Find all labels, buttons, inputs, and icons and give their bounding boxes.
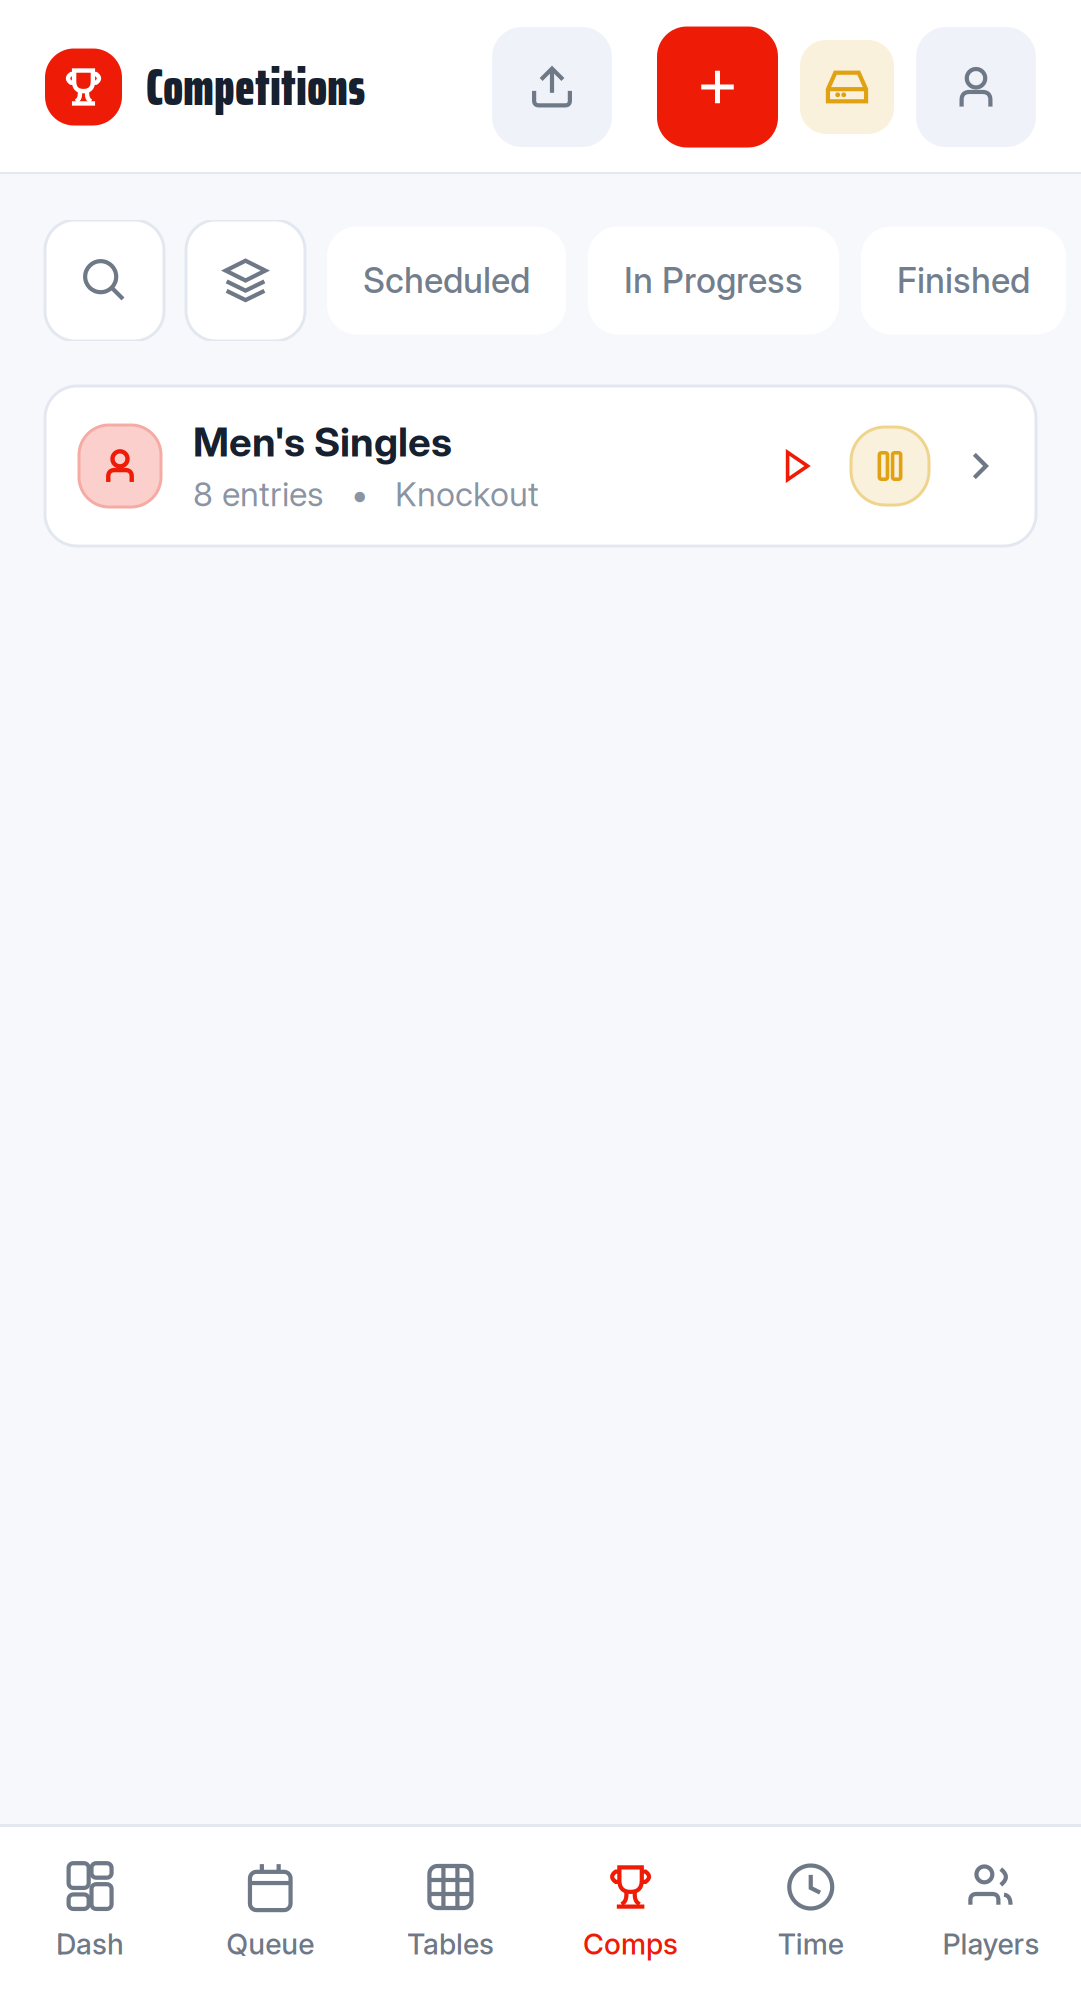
button[interactable]: Finished — [861, 226, 1066, 334]
staticText: In Progress — [624, 259, 803, 301]
button[interactable]: Storage — [800, 40, 894, 134]
button[interactable]: Pause competition — [851, 427, 929, 505]
button[interactable]: Men's Singles — [0, 341, 1081, 546]
button[interactable]: Comps — [540, 1859, 721, 1955]
button[interactable]: Queue — [180, 1859, 360, 1955]
staticText: Competitions — [146, 46, 365, 128]
staticText: Dash — [56, 1927, 124, 1961]
staticText: Comps — [583, 1927, 678, 1961]
button[interactable]: New competition — [657, 26, 778, 147]
staticText: Scheduled — [363, 259, 530, 301]
button[interactable]: Time — [721, 1859, 901, 1955]
staticText: Queue — [226, 1927, 314, 1961]
button[interactable]: Search — [45, 220, 164, 341]
button[interactable]: Group — [186, 220, 305, 341]
button[interactable]: Account — [916, 27, 1036, 147]
button[interactable]: Tables — [360, 1859, 540, 1955]
button[interactable]: Scheduled — [327, 226, 566, 334]
button[interactable]: Start competition — [775, 445, 817, 487]
staticText: Time — [778, 1927, 844, 1961]
button[interactable]: Players — [901, 1859, 1081, 1955]
staticText: Players — [942, 1927, 1039, 1961]
staticText: Men's Singles — [193, 418, 452, 466]
button[interactable]: In Progress — [588, 226, 839, 334]
staticText: Tables — [407, 1927, 494, 1961]
button[interactable]: Competitions — [45, 46, 365, 128]
button[interactable]: Dash — [0, 1859, 180, 1955]
button[interactable]: Share — [492, 27, 612, 147]
staticText: Finished — [897, 259, 1030, 301]
staticText: 8 entries • Knockout — [193, 474, 539, 514]
